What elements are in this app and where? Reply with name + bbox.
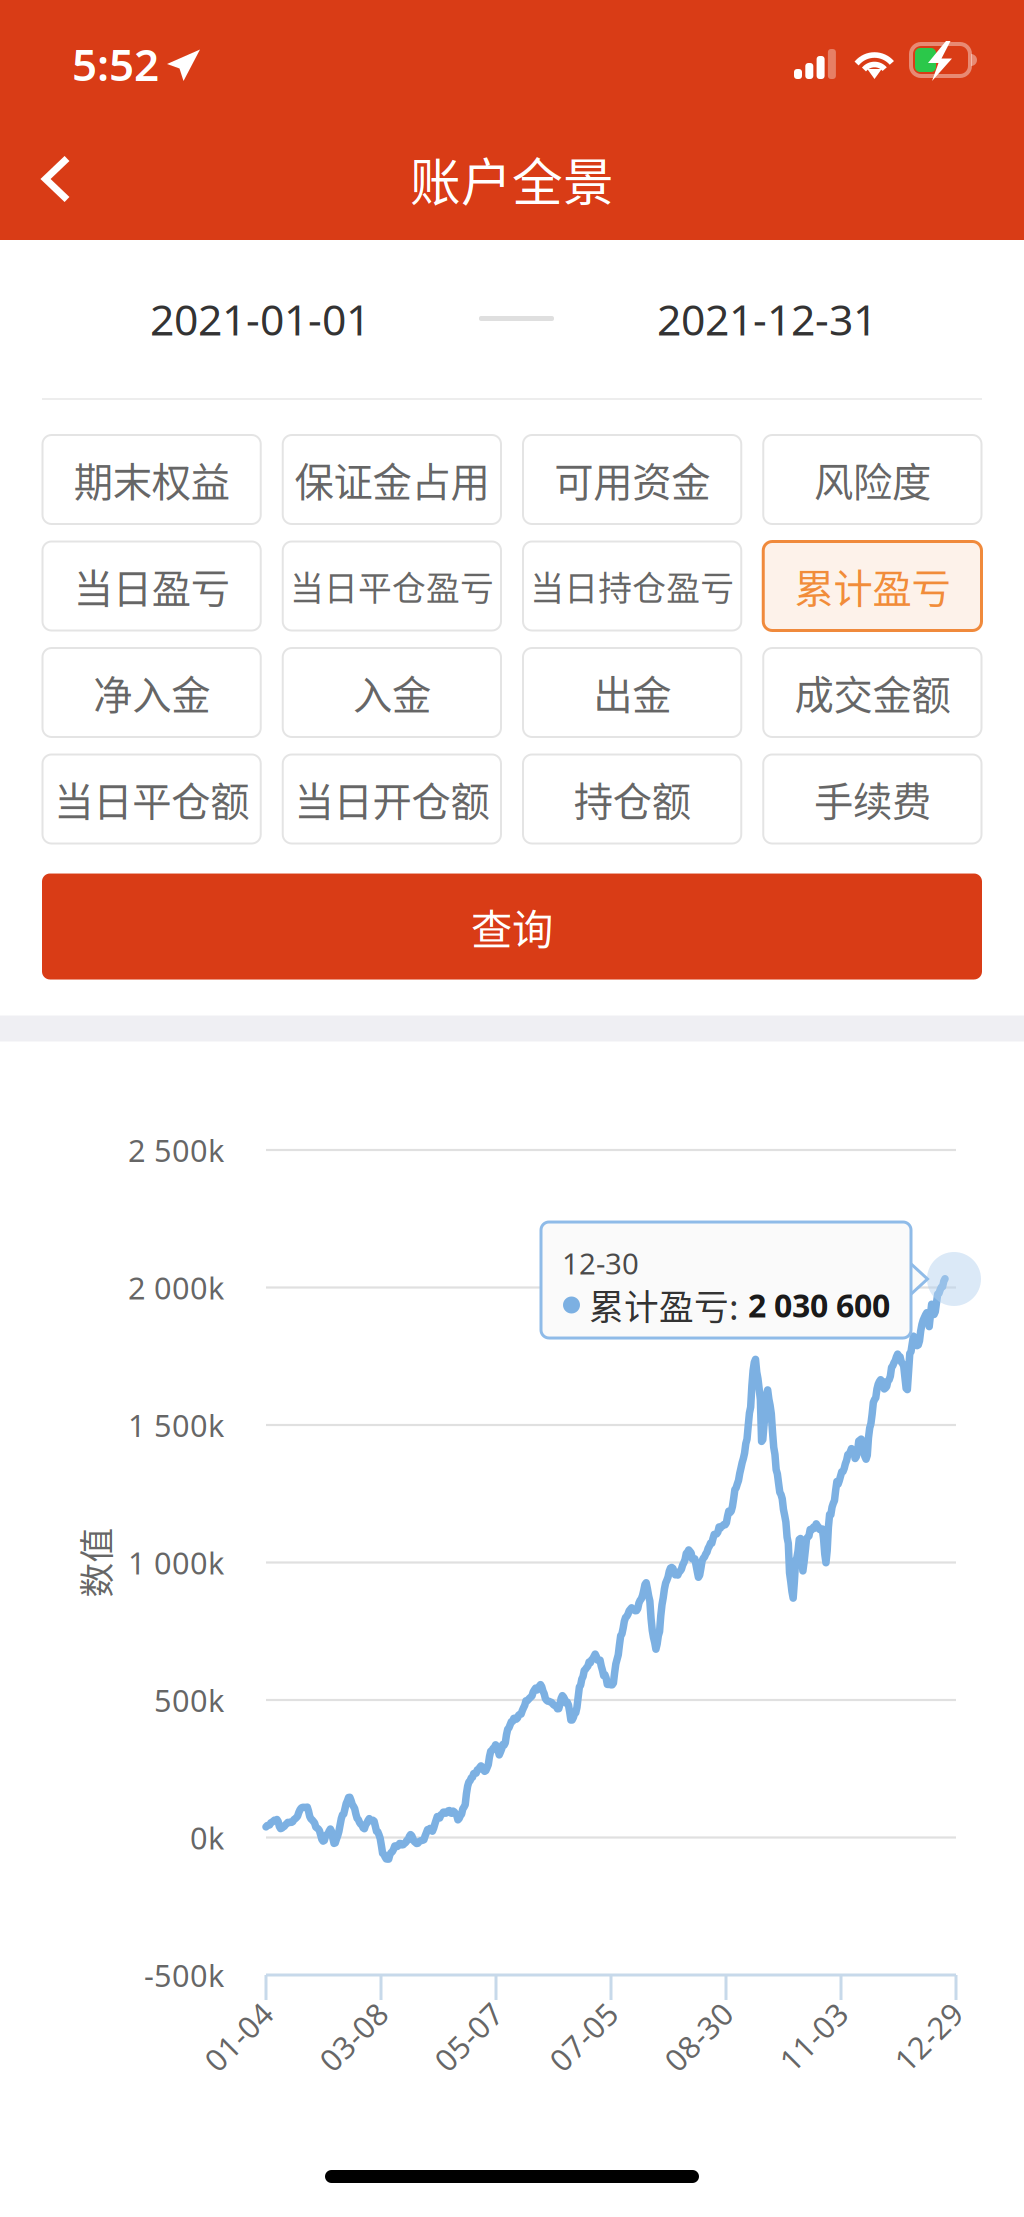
- button[interactable]: 当日平仓盈亏: [283, 541, 501, 630]
- staticText: 12-29: [887, 2016, 969, 2057]
- button[interactable]: 保证金占用: [283, 435, 501, 524]
- staticText: 账户全景: [410, 142, 614, 216]
- staticText: 持仓额: [574, 770, 691, 827]
- button[interactable]: 净入金: [42, 648, 261, 737]
- button[interactable]: 查询: [42, 873, 982, 979]
- button[interactable]: 累计盈亏: [763, 541, 981, 630]
- staticText: 2 000k: [128, 1267, 224, 1308]
- staticText: 当日平仓额: [54, 770, 249, 827]
- button[interactable]: 手续费: [763, 754, 981, 843]
- staticText: -500k: [144, 1955, 224, 1995]
- staticText: 数值: [60, 1537, 130, 1588]
- staticText: 01-04: [197, 2016, 279, 2057]
- staticText: 1 500k: [128, 1405, 224, 1445]
- staticText: 风险度: [814, 451, 931, 508]
- button[interactable]: 当日盈亏: [42, 541, 261, 630]
- staticText: 03-08: [312, 2016, 394, 2057]
- staticText: 05-07: [427, 2016, 509, 2057]
- staticText: 2 500k: [128, 1130, 224, 1170]
- staticText: 保证金占用: [294, 451, 489, 508]
- staticText: 11-03: [772, 2016, 854, 2057]
- staticText: 成交金额: [794, 664, 950, 721]
- staticText: 累计盈亏:: [589, 1280, 739, 1330]
- staticText: 5:52: [72, 35, 159, 93]
- button[interactable]: 持仓额: [523, 754, 741, 843]
- staticText: 2 030 600: [748, 1284, 890, 1326]
- button[interactable]: 风险度: [763, 435, 981, 524]
- staticText: 500k: [154, 1680, 224, 1720]
- staticText: 出金: [593, 664, 671, 721]
- button[interactable]: 期末权益: [42, 435, 261, 524]
- staticText: 入金: [353, 664, 431, 721]
- staticText: 当日持仓盈亏: [530, 562, 734, 610]
- button[interactable]: 当日持仓盈亏: [523, 541, 741, 630]
- button[interactable]: 出金: [523, 648, 741, 737]
- staticText: 2021-12-31: [657, 291, 877, 347]
- button[interactable]: 成交金额: [763, 648, 981, 737]
- button[interactable]: Back: [2, 124, 130, 234]
- staticText: 期末权益: [74, 451, 230, 508]
- staticText: 累计盈亏: [794, 557, 950, 614]
- staticText: 净入金: [93, 664, 210, 721]
- staticText: 12-30: [562, 1243, 639, 1282]
- staticText: 手续费: [814, 770, 931, 827]
- staticText: 当日盈亏: [74, 557, 230, 614]
- staticText: 08-30: [657, 2016, 739, 2057]
- staticText: 0k: [190, 1817, 224, 1858]
- button[interactable]: 2021-01-01: [100, 264, 420, 374]
- staticText: 当日平仓盈亏: [290, 562, 494, 610]
- button[interactable]: 入金: [283, 648, 501, 737]
- staticText: 2021-01-01: [150, 291, 370, 347]
- staticText: 可用资金: [554, 451, 710, 508]
- staticText: 查询: [471, 897, 553, 956]
- button[interactable]: 可用资金: [523, 435, 741, 524]
- staticText: 1 000k: [128, 1542, 224, 1583]
- button[interactable]: 当日平仓额: [42, 754, 261, 843]
- button[interactable]: 2021-12-31: [607, 264, 927, 374]
- button[interactable]: 当日开仓额: [283, 754, 501, 843]
- staticText: 07-05: [542, 2016, 624, 2057]
- staticText: 当日开仓额: [294, 770, 489, 827]
